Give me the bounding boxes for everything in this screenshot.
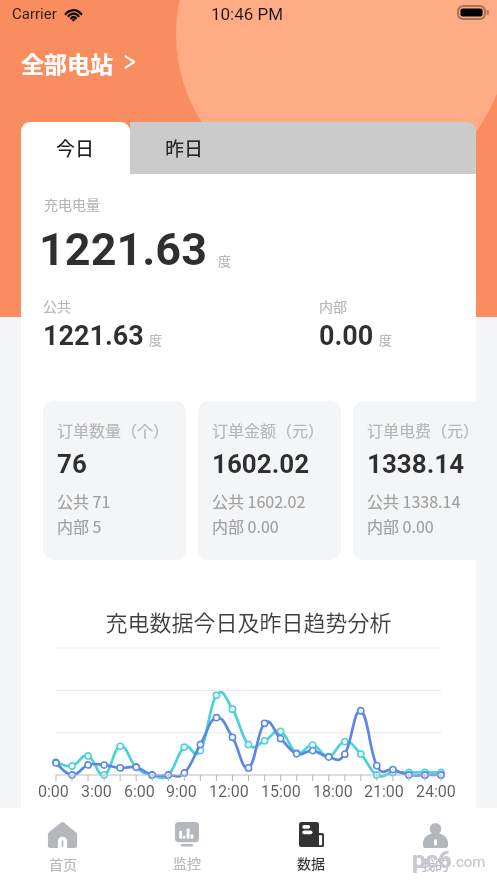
staticText: 0:00	[38, 782, 69, 801]
staticText: 首页	[49, 854, 77, 874]
staticText: 6:00	[124, 782, 155, 801]
staticText: 监控	[173, 853, 201, 873]
staticText: 1221.63	[43, 320, 144, 352]
staticText: 10:46 PM	[211, 4, 284, 24]
button[interactable]: 订单数量（个）	[43, 401, 186, 560]
staticText: 昨日	[165, 134, 204, 162]
staticText: 公共 71	[57, 489, 111, 512]
staticText: 76	[57, 449, 87, 479]
staticText: 数据	[297, 853, 325, 873]
staticText: 24:00	[416, 782, 456, 801]
staticText: Carrier	[12, 5, 57, 23]
staticText: 订单数量（个）	[57, 418, 170, 441]
staticText: 21:00	[364, 782, 404, 801]
staticText: 1221.63	[39, 223, 208, 276]
staticText: 12:00	[209, 782, 249, 801]
button[interactable]: 我的	[373, 808, 497, 883]
staticText: 内部	[319, 296, 347, 316]
staticText: 公共 1338.14	[367, 489, 461, 512]
staticText: 度	[149, 330, 163, 349]
button[interactable]: 订单电费（元）	[353, 401, 496, 560]
staticText: 充电数据今日及昨日趋势分析	[21, 605, 476, 637]
staticText: 9:00	[166, 782, 197, 801]
staticText: 订单电费（元）	[367, 418, 480, 441]
staticText: 内部 5	[57, 514, 102, 537]
button[interactable]: 今日	[21, 122, 130, 174]
staticText: 1602.02	[212, 449, 310, 479]
staticText: .com	[452, 853, 486, 871]
staticText: 3:00	[81, 782, 112, 801]
staticText: pc6	[412, 846, 452, 874]
staticText: 内部 0.00	[367, 514, 434, 537]
staticText: 充电电量	[44, 194, 100, 214]
staticText: 度	[379, 330, 393, 349]
button[interactable]: 监控	[125, 808, 249, 883]
staticText: 15:00	[261, 782, 301, 801]
button[interactable]: 昨日	[130, 122, 476, 174]
staticText: 订单金额（元）	[212, 418, 325, 441]
staticText: 公共 1602.02	[212, 489, 306, 512]
button[interactable]: 首页	[0, 808, 125, 883]
staticText: 我的	[421, 854, 449, 874]
staticText: 度	[218, 251, 232, 270]
staticText: 全部电站	[21, 46, 113, 79]
staticText: 今日	[56, 134, 95, 162]
staticText: 1338.14	[367, 449, 465, 479]
staticText: 公共	[43, 296, 71, 316]
button[interactable]: 全部电站	[21, 43, 137, 81]
staticText: 18:00	[313, 782, 353, 801]
button[interactable]: 数据	[249, 808, 373, 883]
staticText: 0.00	[319, 320, 374, 352]
button[interactable]: 订单金额（元）	[198, 401, 341, 560]
staticText: 内部 0.00	[212, 514, 279, 537]
